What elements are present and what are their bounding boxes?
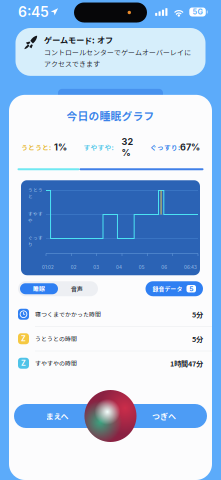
button[interactable]: つぎへ [121,404,207,428]
staticText: 1時間47分 [170,358,203,368]
staticText: すやすや: [83,142,113,152]
staticText: うとうと [28,186,43,199]
button[interactable]: ゲームモード: オフ [15,28,205,76]
staticText: うとうと: [21,142,51,152]
staticText: うとうとの時間 [35,334,77,343]
staticText: 03 [93,264,99,270]
button[interactable]: Z [9,351,212,375]
staticText: 01:02 [42,264,54,270]
staticText: 5 [189,285,193,293]
button[interactable]: 寝つくまでかかった時間 [9,302,212,326]
staticText: ぐっすり: [150,142,180,152]
button[interactable]: Z [9,327,212,351]
staticText: 5分 [192,333,203,344]
staticText: 5分 [192,309,203,319]
staticText: すやすやの時間 [35,359,77,367]
staticText: 06:43 [184,264,197,270]
staticText: 67% [180,142,200,153]
staticText: コントロールセンターでゲームオーバーレイに [44,47,191,57]
staticText: 32% [121,136,133,158]
staticText: 音声 [71,284,83,293]
staticText: 06 [161,264,167,270]
staticText: 今日の睡眠グラフ [66,108,154,123]
staticText: Z [21,359,26,368]
staticText: Z [21,334,26,343]
staticText: 05 [139,264,145,270]
button[interactable]: 睡眠 [20,283,58,294]
staticText: まえへ [45,410,68,422]
staticText: すやすや [28,210,43,223]
staticText: 02 [71,264,77,270]
staticText: 6:45 [18,3,49,20]
staticText: ゲームモード: オフ [44,34,113,46]
staticText: 5G [193,8,203,16]
button[interactable]: まえへ [14,404,100,428]
button[interactable]: 録音データ [145,281,203,296]
staticText: つぎへ [152,410,176,422]
staticText: 1% [54,142,67,153]
staticText: アクセスできます [44,59,100,69]
staticText: 04 [116,264,122,270]
staticText: 録音データ [152,284,182,293]
staticText: 寝つくまでかかった時間 [35,310,101,318]
staticText: ぐっすり [28,234,43,247]
staticText: 睡眠 [33,284,45,293]
button[interactable]: 音声 [58,283,96,294]
